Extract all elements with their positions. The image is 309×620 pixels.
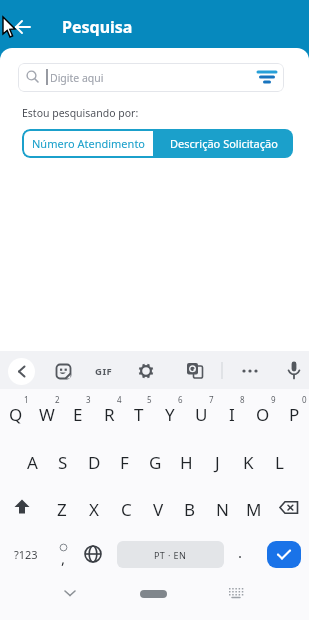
- button[interactable]: Q: [1, 399, 31, 430]
- staticText: 0: [302, 394, 307, 405]
- staticText: .: [238, 542, 243, 562]
- staticText: 1: [24, 394, 29, 405]
- staticText: K: [243, 451, 254, 474]
- staticText: ,: [61, 548, 66, 568]
- button[interactable]: H: [171, 447, 201, 478]
- button[interactable]: [10, 15, 36, 39]
- staticText: S: [58, 451, 68, 474]
- button[interactable]: D: [79, 447, 109, 478]
- button[interactable]: [18, 63, 284, 92]
- button[interactable]: P: [279, 399, 309, 430]
- button[interactable]: [253, 63, 281, 92]
- button[interactable]: I: [217, 399, 247, 430]
- button[interactable]: F: [109, 447, 139, 478]
- button[interactable]: W: [32, 399, 62, 430]
- button[interactable]: .: [232, 538, 248, 565]
- button[interactable]: [8, 358, 35, 385]
- staticText: 5: [147, 394, 152, 405]
- button[interactable]: Y: [155, 399, 185, 430]
- button[interactable]: R: [94, 399, 124, 430]
- staticText: 9: [271, 394, 276, 405]
- staticText: G: [149, 451, 162, 474]
- button[interactable]: X: [79, 494, 109, 525]
- button[interactable]: [55, 363, 73, 381]
- staticText: 3: [86, 394, 91, 405]
- staticText: PT · EN: [154, 549, 187, 561]
- button[interactable]: Z: [47, 494, 77, 525]
- staticText: 8: [240, 394, 245, 405]
- button[interactable]: U: [186, 399, 216, 430]
- staticText: R: [104, 403, 115, 426]
- button[interactable]: M: [239, 494, 269, 525]
- staticText: ?123: [14, 547, 38, 562]
- button[interactable]: [240, 362, 260, 380]
- button[interactable]: PT · EN: [117, 541, 224, 568]
- button[interactable]: O: [248, 399, 278, 430]
- staticText: 7: [209, 394, 214, 405]
- staticText: U: [195, 403, 208, 426]
- staticText: F: [120, 451, 129, 474]
- staticText: 2: [55, 394, 60, 405]
- staticText: Digite aqui: [50, 71, 104, 85]
- staticText: P: [289, 403, 300, 426]
- staticText: 4: [117, 394, 122, 405]
- staticText: J: [215, 451, 220, 474]
- button[interactable]: E: [63, 399, 93, 430]
- button[interactable]: [137, 362, 155, 380]
- staticText: T: [134, 403, 144, 426]
- staticText: D: [88, 451, 101, 474]
- staticText: A: [27, 451, 38, 474]
- staticText: O: [256, 403, 270, 426]
- staticText: V: [153, 498, 164, 521]
- staticText: Y: [165, 403, 175, 426]
- button[interactable]: ?123: [8, 541, 44, 568]
- button[interactable]: V: [143, 494, 173, 525]
- staticText: E: [73, 403, 83, 426]
- staticText: H: [180, 451, 193, 474]
- button[interactable]: G: [140, 447, 170, 478]
- staticText: B: [184, 498, 196, 521]
- button[interactable]: T: [124, 399, 154, 430]
- staticText: I: [229, 403, 235, 426]
- button[interactable]: N: [207, 494, 237, 525]
- button[interactable]: [275, 495, 303, 521]
- staticText: L: [275, 451, 284, 474]
- staticText: Número Atendimento: [32, 136, 146, 151]
- button[interactable]: [140, 590, 167, 598]
- button[interactable]: [267, 541, 301, 568]
- button[interactable]: Número Atendimento: [22, 129, 155, 158]
- staticText: Estou pesquisando por:: [22, 106, 139, 120]
- staticText: M: [246, 498, 262, 521]
- button[interactable]: Descrição Solicitação: [155, 129, 293, 158]
- staticText: W: [39, 403, 55, 426]
- button[interactable]: [83, 544, 103, 564]
- staticText: C: [121, 498, 132, 521]
- staticText: Pesquisa: [62, 16, 133, 36]
- button[interactable]: A: [17, 447, 47, 478]
- staticText: X: [89, 498, 99, 521]
- staticText: 6: [178, 394, 183, 405]
- staticText: Z: [57, 498, 67, 521]
- button[interactable]: J: [202, 447, 232, 478]
- button[interactable]: K: [233, 447, 263, 478]
- button[interactable]: GIF: [90, 362, 118, 380]
- button[interactable]: [186, 362, 204, 380]
- button[interactable]: L: [264, 447, 294, 478]
- button[interactable]: [58, 583, 82, 603]
- staticText: Descrição Solicitação: [170, 136, 278, 151]
- button[interactable]: [285, 359, 303, 381]
- button[interactable]: S: [48, 447, 78, 478]
- button[interactable]: ,: [54, 544, 72, 571]
- staticText: Q: [9, 403, 23, 426]
- staticText: N: [216, 498, 229, 521]
- button[interactable]: [8, 494, 36, 522]
- button[interactable]: B: [175, 494, 205, 525]
- button[interactable]: C: [111, 494, 141, 525]
- staticText: GIF: [95, 365, 113, 378]
- button[interactable]: [226, 584, 246, 602]
